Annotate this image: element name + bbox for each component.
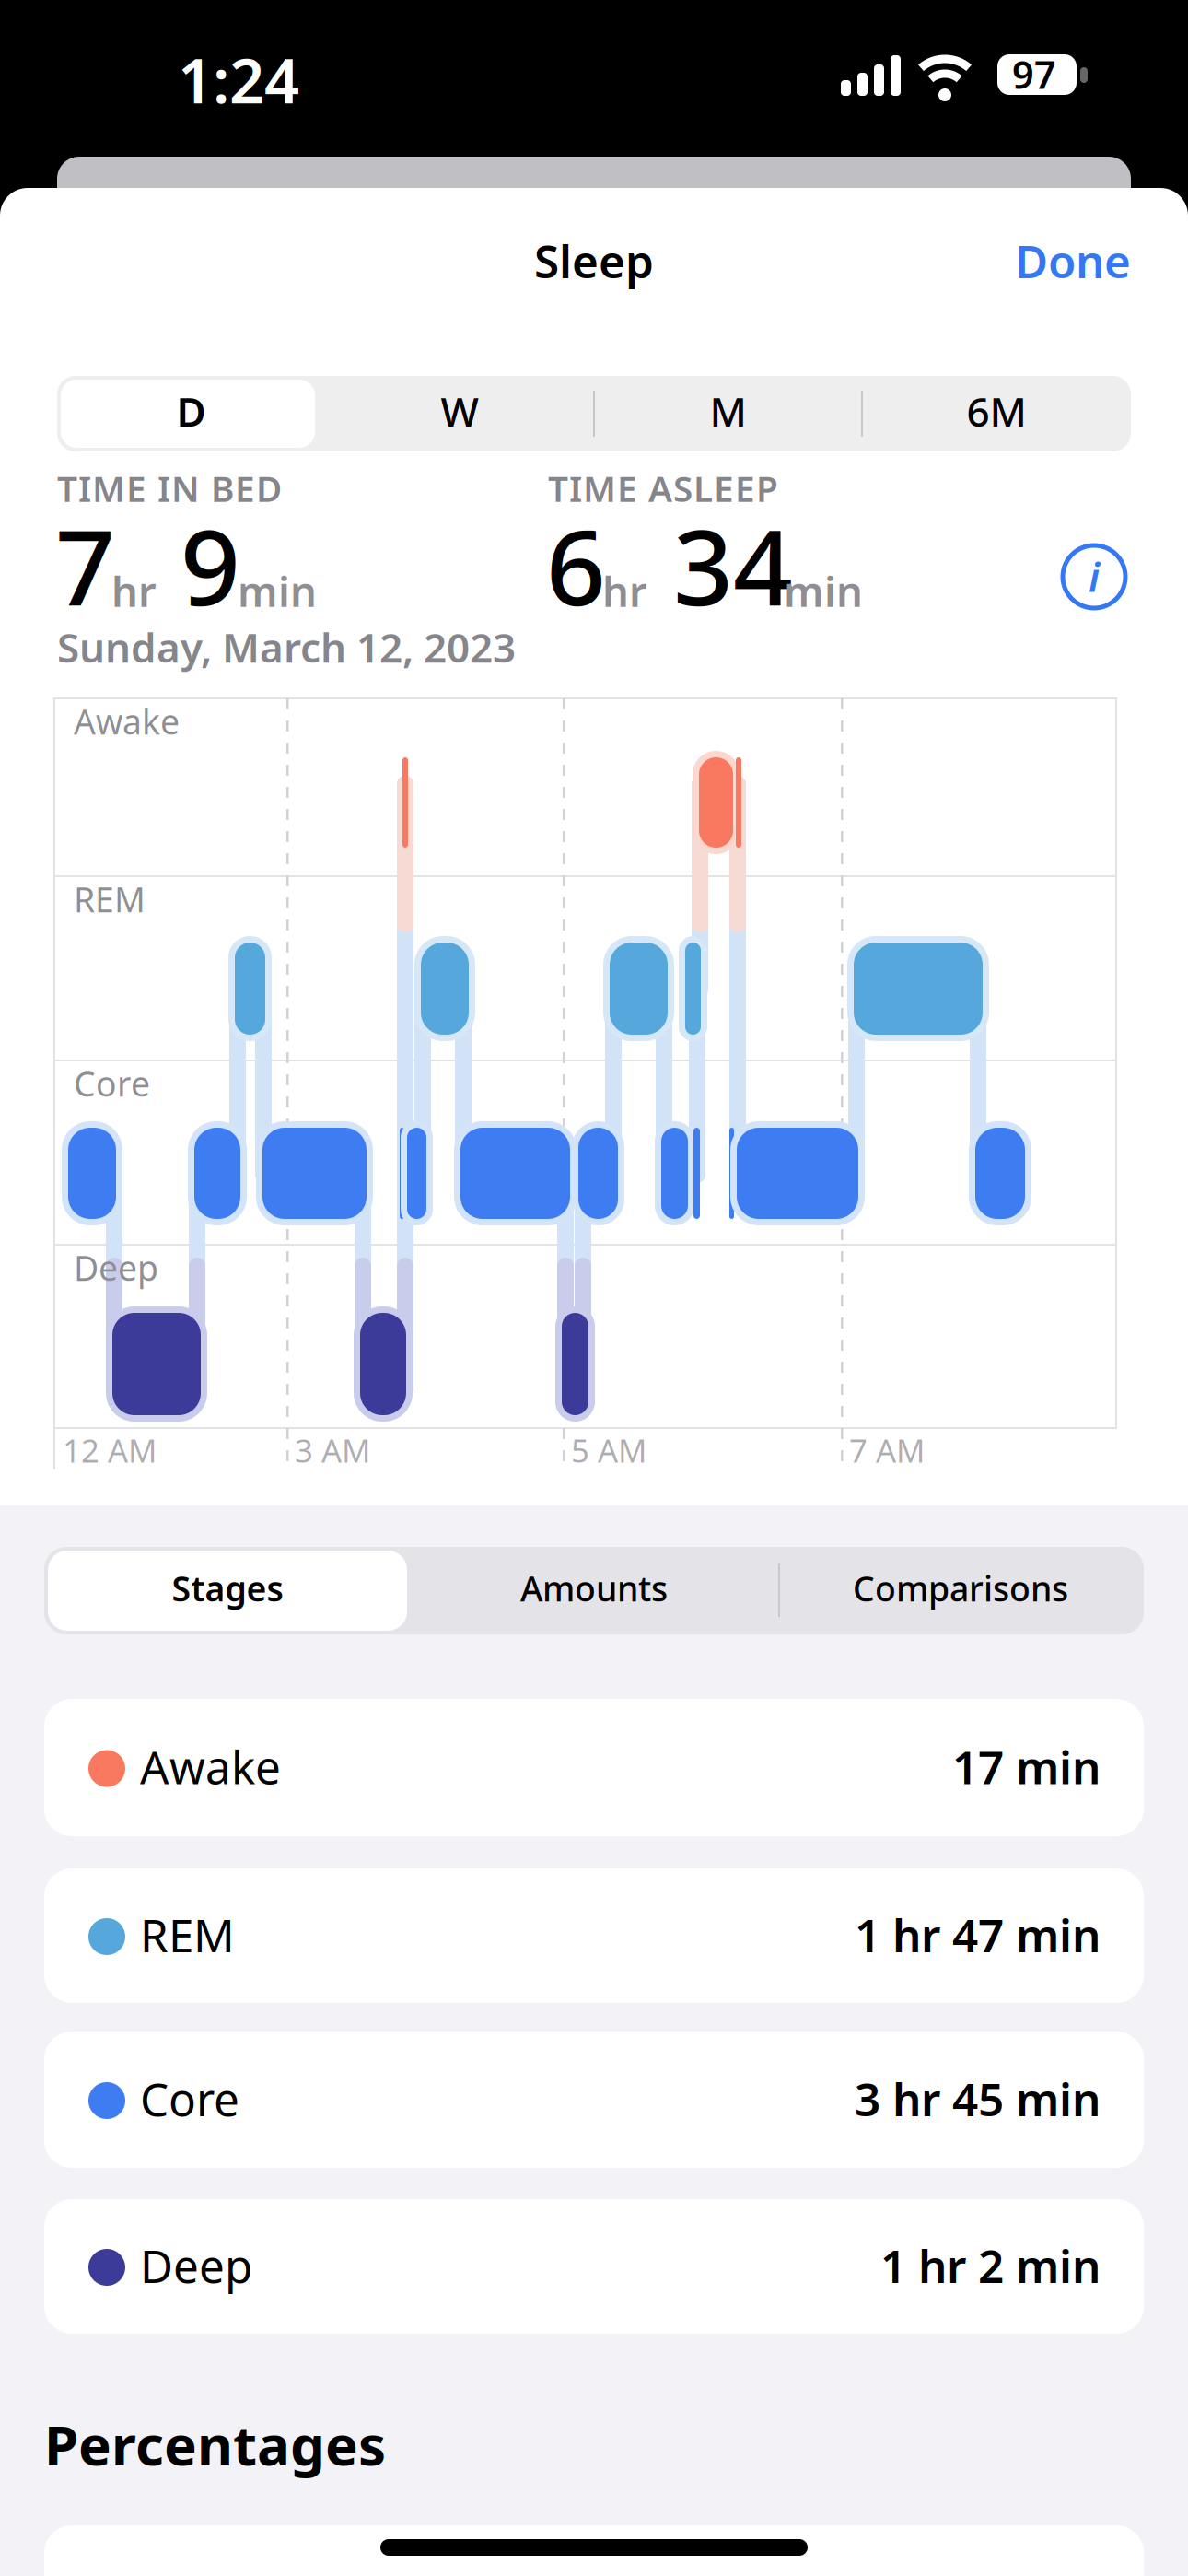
staticText: Amounts <box>520 1565 668 1611</box>
staticText: Comparisons <box>853 1565 1068 1611</box>
staticText: min <box>238 563 317 618</box>
staticText: 1 hr 47 min <box>855 1904 1101 1965</box>
staticText: 1:24 <box>178 39 299 120</box>
staticText: i <box>1089 551 1100 603</box>
staticText: REM <box>74 876 146 922</box>
button[interactable]: 6M <box>862 384 1130 438</box>
staticText: 5 AM <box>571 1429 646 1471</box>
staticText: 3 AM <box>295 1429 370 1471</box>
button[interactable]: Amounts <box>411 1565 777 1611</box>
staticText: min <box>784 563 863 618</box>
button[interactable]: D <box>57 384 325 438</box>
staticText: Awake <box>140 1736 281 1797</box>
staticText: 17 min <box>952 1736 1101 1797</box>
staticText: Stages <box>172 1565 283 1611</box>
staticText: Sunday, March 12, 2023 <box>57 620 516 674</box>
button[interactable]: Done <box>891 230 1131 291</box>
staticText: 3 hr 45 min <box>855 2068 1101 2129</box>
button[interactable]: Stages <box>44 1565 411 1611</box>
button[interactable]: W <box>326 384 594 438</box>
staticText: 97 <box>1012 49 1056 99</box>
staticText: 12 AM <box>63 1429 157 1471</box>
staticText: 7 AM <box>849 1429 925 1471</box>
staticText: Core <box>74 1060 150 1106</box>
staticText: D <box>176 384 206 438</box>
staticText: 1 hr 2 min <box>880 2235 1101 2295</box>
staticText: 6M <box>967 384 1026 438</box>
staticText: 7 <box>55 496 115 634</box>
staticText: TIME IN BED <box>57 464 282 512</box>
staticText: M <box>710 384 746 438</box>
staticText: W <box>441 384 478 438</box>
staticText: Core <box>140 2068 239 2129</box>
staticText: Done <box>1015 230 1131 291</box>
staticText: REM <box>140 1904 235 1965</box>
staticText: hr <box>111 563 157 618</box>
staticText: Sleep <box>534 230 654 291</box>
staticText: 34 <box>673 496 793 634</box>
button[interactable]: M <box>594 384 862 438</box>
staticText: TIME ASLEEP <box>548 464 778 512</box>
button[interactable]: i <box>1061 544 1127 610</box>
staticText: Awake <box>74 698 180 744</box>
button[interactable]: Comparisons <box>777 1565 1144 1611</box>
staticText: Deep <box>74 1245 158 1290</box>
staticText: hr <box>602 563 647 618</box>
staticText: Deep <box>140 2235 252 2295</box>
staticText: 6 <box>546 496 606 634</box>
staticText: Percentages <box>44 2407 386 2481</box>
staticText: 9 <box>181 496 240 634</box>
